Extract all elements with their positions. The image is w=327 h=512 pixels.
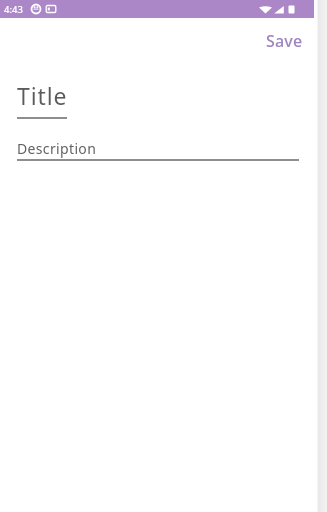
other: Screenshot saved bbox=[46, 4, 56, 14]
staticText: Title bbox=[17, 80, 68, 111]
staticText: Description bbox=[17, 139, 97, 158]
other: Battery bbox=[288, 4, 295, 15]
other: Alarm set bbox=[31, 4, 41, 14]
button[interactable]: Title bbox=[17, 80, 107, 120]
other: Wi-Fi bbox=[259, 4, 272, 15]
staticText: Save bbox=[266, 30, 303, 52]
button[interactable]: Description bbox=[17, 139, 299, 162]
staticText: 4:43 bbox=[4, 3, 23, 16]
other: Mobile signal bbox=[273, 4, 285, 15]
button[interactable]: Save bbox=[257, 25, 312, 57]
